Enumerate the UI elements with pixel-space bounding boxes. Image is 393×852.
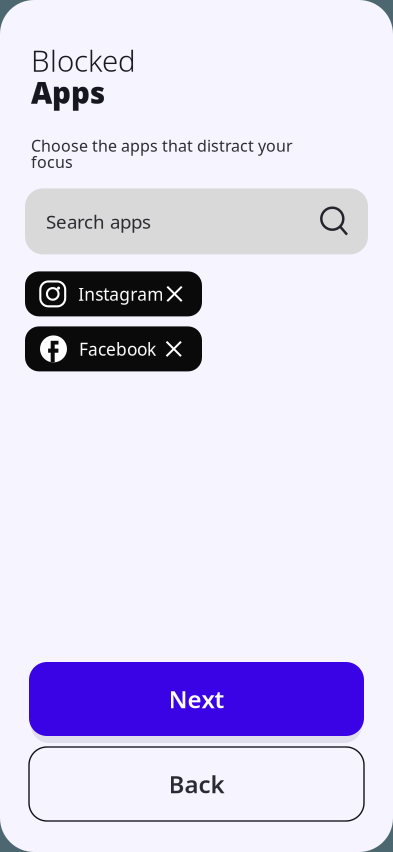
button[interactable]: Back bbox=[29, 747, 364, 821]
button[interactable]: Next bbox=[29, 662, 364, 736]
staticText: Choose the apps that distract your bbox=[31, 135, 293, 156]
staticText: Instagram bbox=[78, 282, 163, 305]
button[interactable]: Facebook bbox=[25, 326, 202, 371]
staticText: focus bbox=[31, 151, 73, 172]
staticText: Next bbox=[168, 683, 224, 715]
staticText: Apps bbox=[31, 73, 105, 112]
staticText: Facebook bbox=[79, 337, 156, 360]
staticText: Blocked bbox=[31, 41, 136, 80]
staticText: Back bbox=[168, 768, 224, 800]
staticText: Search apps bbox=[46, 209, 151, 234]
button[interactable]: Instagram bbox=[25, 271, 202, 316]
